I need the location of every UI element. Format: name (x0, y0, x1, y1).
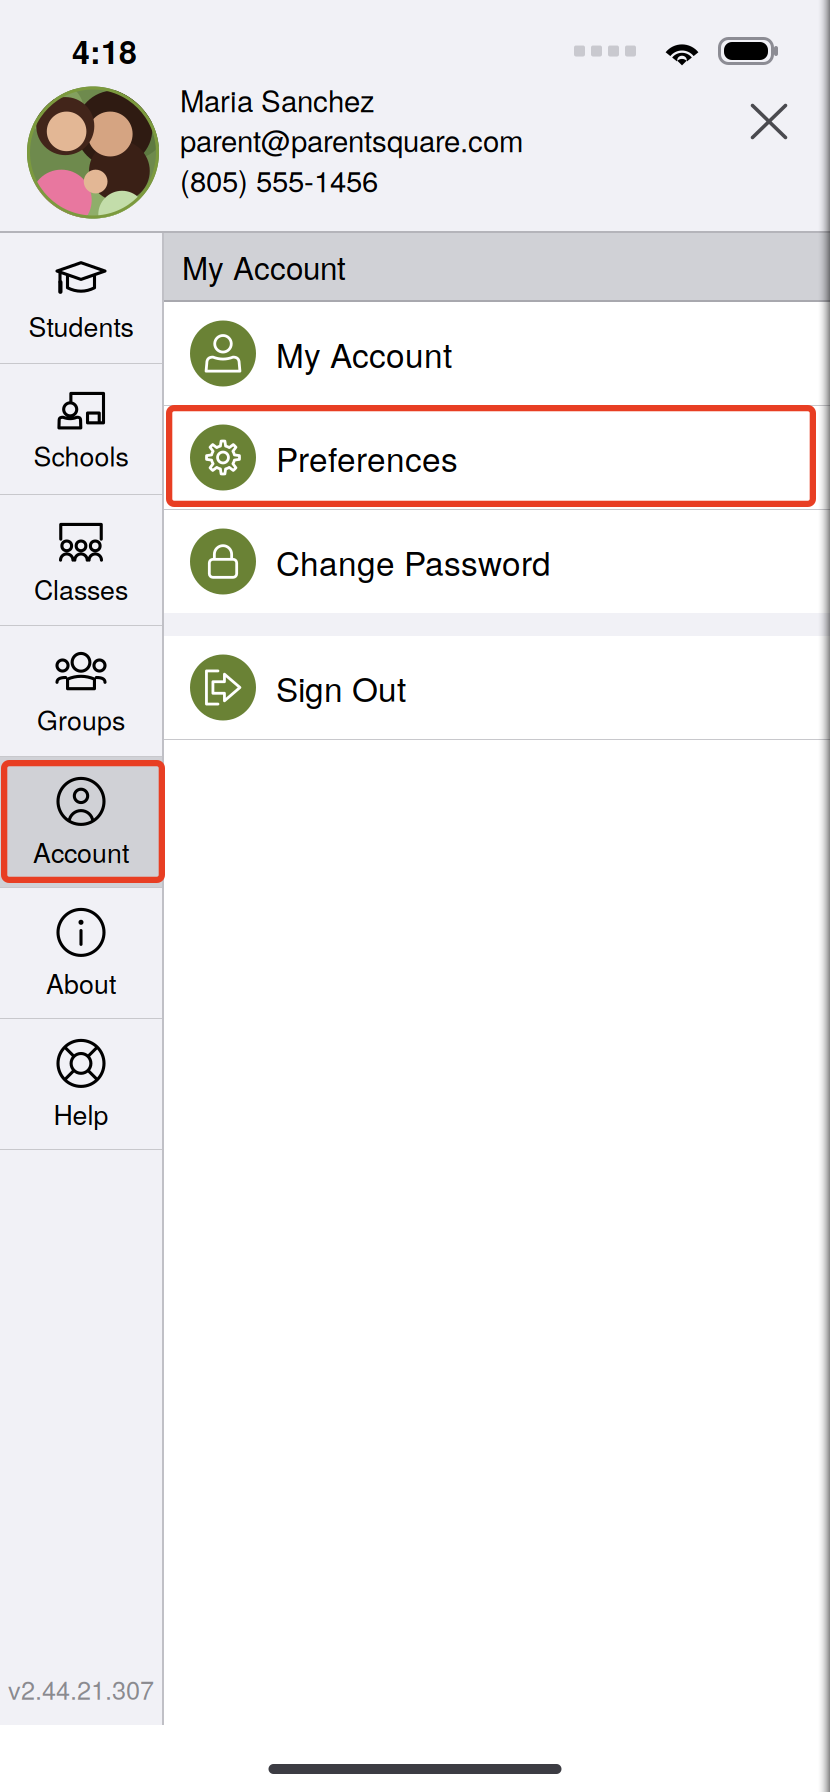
button[interactable]: Help (0, 1019, 162, 1149)
staticText: Groups (37, 700, 125, 738)
staticText: parent@parentsquare.com (180, 118, 523, 160)
staticText: Maria Sanchez (180, 78, 375, 120)
button[interactable]: My Account (164, 302, 830, 405)
staticText: Change Password (276, 538, 551, 585)
button[interactable]: Classes (0, 495, 162, 625)
button[interactable]: Sign Out (164, 636, 830, 739)
staticText: Account (33, 832, 129, 871)
button[interactable]: Account (0, 757, 162, 887)
staticText: Sign Out (276, 664, 406, 711)
staticText: About (46, 963, 116, 1002)
staticText: My Account (182, 244, 346, 289)
button[interactable]: Close (732, 84, 806, 158)
staticText: Help (53, 1094, 108, 1133)
button[interactable]: About (0, 888, 162, 1018)
button[interactable]: Students (0, 233, 162, 363)
staticText: Preferences (276, 434, 458, 481)
staticText: Students (28, 306, 133, 345)
button[interactable]: Change Password (164, 510, 830, 613)
staticText: (805) 555-1456 (180, 158, 378, 200)
staticText: Classes (34, 569, 128, 608)
button[interactable]: Schools (0, 364, 162, 494)
staticText: My Account (276, 330, 452, 377)
button[interactable]: Preferences (164, 406, 830, 509)
staticText: 4:18 (72, 28, 137, 74)
staticText: Schools (33, 436, 128, 474)
staticText: v2.44.21.307 (8, 1671, 154, 1707)
button[interactable]: Groups (0, 626, 162, 756)
